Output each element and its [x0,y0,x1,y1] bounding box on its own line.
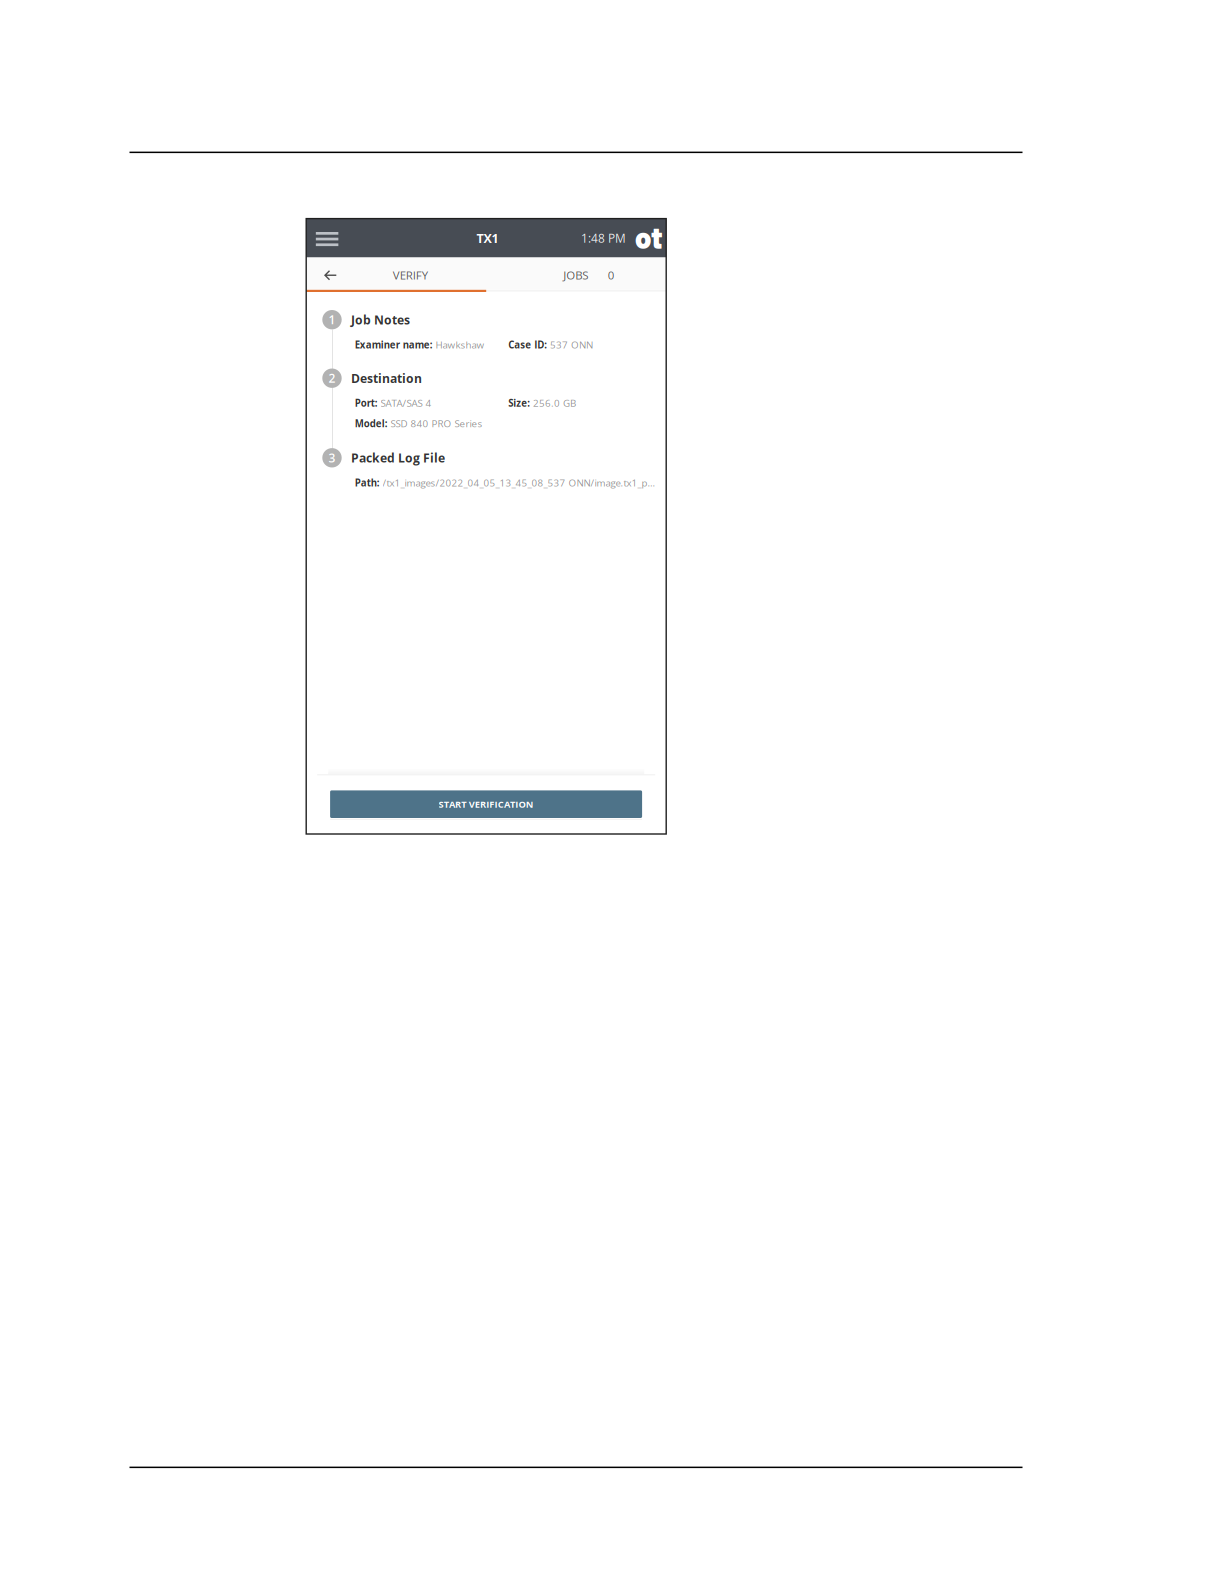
staticText: VERIFY [393,267,428,283]
staticText: 1:48 PM [581,230,626,246]
staticText: Hawkshaw [436,338,485,351]
staticText: TX1 [476,229,498,247]
button[interactable]: START VERIFICATION [330,790,642,818]
staticText: 256.0 GB [533,396,576,409]
button[interactable]: Menu [306,219,348,257]
staticText: ot [635,219,662,255]
staticText: Job Notes [351,311,410,328]
staticText: Path: [355,476,380,489]
staticText: 0 [608,267,615,283]
staticText: Size: [508,396,530,409]
staticText: Model: [355,417,388,430]
button[interactable]: Back [314,259,348,291]
staticText: SATA/SAS 4 [381,396,432,409]
staticText: Examiner name: [355,338,433,351]
staticText: SSD 840 PRO Series [391,417,483,430]
staticText: Case ID: [508,338,547,351]
staticText: 537 ONN [550,338,593,351]
staticText: START VERIFICATION [439,798,534,810]
staticText: JOBS [563,267,588,283]
staticText: /tx1_images/2022_04_05_13_45_08_537 ONN/… [383,476,656,489]
button[interactable]: JOBS [486,257,666,290]
staticText: 1 [328,311,335,328]
staticText: 2 [328,370,335,386]
staticText: 3 [328,450,335,466]
staticText: Packed Log File [351,449,445,466]
button[interactable]: VERIFY [306,257,486,290]
staticText: Port: [355,396,378,409]
staticText: Destination [351,370,422,386]
